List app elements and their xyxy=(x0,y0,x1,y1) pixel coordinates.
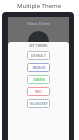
button[interactable]: RED xyxy=(27,87,50,96)
button[interactable]: INDIGO xyxy=(27,63,50,72)
staticText: BLUEGREY xyxy=(30,101,48,106)
button[interactable]: BLUEGREY xyxy=(27,99,50,108)
staticText: Multiple Theme xyxy=(17,2,62,10)
staticText: INDIGO xyxy=(32,65,46,70)
staticText: DEFAULT xyxy=(31,53,46,58)
staticText: RED xyxy=(35,89,42,94)
staticText: GREEN xyxy=(33,77,45,82)
button[interactable]: GREEN xyxy=(27,75,50,84)
staticText: Views Demo xyxy=(27,21,51,26)
staticText: SET THEME xyxy=(29,43,48,48)
button[interactable]: DEFAULT xyxy=(27,51,50,60)
